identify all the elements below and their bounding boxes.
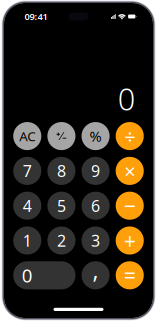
staticText: 9 xyxy=(91,160,100,181)
button[interactable]: AC xyxy=(13,122,41,150)
button[interactable]: + xyxy=(116,226,144,254)
button[interactable]: = xyxy=(116,261,144,289)
staticText: 0 xyxy=(22,263,33,288)
button[interactable]: 6 xyxy=(81,192,110,220)
staticText: + xyxy=(124,226,136,255)
staticText: 4 xyxy=(23,195,32,216)
button[interactable]: 5 xyxy=(47,192,75,220)
staticText: 0 xyxy=(118,78,136,119)
button[interactable]: − xyxy=(116,192,144,220)
button[interactable]: % xyxy=(81,122,110,150)
staticText: AC xyxy=(19,127,35,145)
staticText: 3 xyxy=(91,230,100,251)
button[interactable]: 7 xyxy=(13,157,41,185)
staticText: 1 xyxy=(23,230,32,251)
staticText: 09:41 xyxy=(24,10,47,23)
staticText: % xyxy=(90,126,102,146)
button[interactable]: 2 xyxy=(47,226,75,254)
staticText: 8 xyxy=(57,160,66,181)
staticText: 7 xyxy=(23,160,32,181)
button[interactable]: 9 xyxy=(81,157,110,185)
button[interactable]: 3 xyxy=(81,226,110,254)
button[interactable]: × xyxy=(116,157,144,185)
staticText: , xyxy=(93,255,99,285)
staticText: 5 xyxy=(57,195,66,216)
button[interactable]: 1 xyxy=(13,226,41,254)
staticText: 2 xyxy=(57,230,66,251)
staticText: − xyxy=(124,191,136,220)
button[interactable]: ÷ xyxy=(116,122,144,150)
button[interactable]: Plus minus xyxy=(47,122,75,150)
staticText: ÷ xyxy=(124,123,135,149)
button[interactable]: 4 xyxy=(13,192,41,220)
button[interactable]: 0 xyxy=(13,261,75,289)
button[interactable]: 8 xyxy=(47,157,75,185)
button[interactable]: , xyxy=(81,261,110,289)
staticText: 6 xyxy=(91,195,100,216)
staticText: × xyxy=(124,158,135,184)
staticText: = xyxy=(124,261,136,289)
